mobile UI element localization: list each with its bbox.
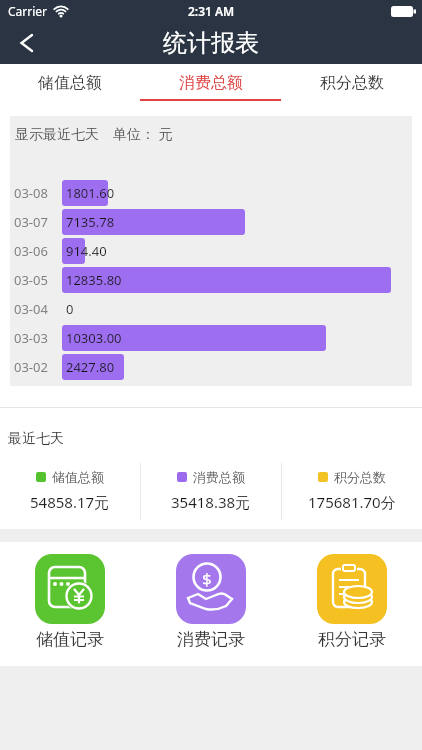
staticText: 03-03 — [14, 329, 48, 347]
staticText: 914.40 — [66, 242, 107, 260]
staticText: 35418.38元 — [171, 492, 251, 512]
staticText: 积分总数 — [334, 469, 386, 485]
staticText: 消费记录 — [177, 629, 245, 650]
staticText: 03-05 — [14, 271, 48, 289]
staticText: 0 — [66, 300, 74, 318]
staticText: 03-08 — [14, 184, 48, 202]
staticText: 12835.80 — [66, 271, 122, 289]
staticText: 175681.70分 — [308, 492, 396, 512]
staticText: 2427.80 — [66, 358, 115, 376]
button[interactable]: 储值记录 — [0, 542, 140, 666]
staticText: 10303.00 — [66, 329, 122, 347]
staticText: 积分记录 — [318, 629, 386, 650]
button[interactable]: 积分总数 — [282, 448, 422, 529]
button[interactable]: 积分总数 — [281, 64, 422, 102]
staticText: 2:31 AM — [188, 3, 235, 19]
button[interactable]: 储值总额 — [0, 64, 140, 102]
button[interactable]: $ — [140, 542, 281, 666]
staticText: $ — [202, 567, 212, 590]
staticText: 储值总额 — [52, 469, 104, 485]
staticText: 统计报表 — [163, 28, 259, 58]
staticText: 03-02 — [14, 358, 48, 376]
button[interactable]: 积分记录 — [281, 542, 422, 666]
button[interactable]: 消费总额 — [141, 448, 281, 529]
staticText: 消费总额 — [179, 73, 243, 93]
staticText: 显示最近七天 单位： 元 — [15, 124, 173, 143]
staticText: 储值记录 — [36, 629, 104, 650]
button[interactable]: 储值总额 — [0, 448, 140, 529]
staticText: 03-07 — [14, 213, 48, 231]
staticText: 03-06 — [14, 242, 48, 260]
staticText: 消费总额 — [193, 469, 245, 485]
staticText: 储值总额 — [38, 73, 102, 93]
staticText: 03-04 — [14, 300, 48, 318]
staticText: Carrier — [8, 3, 48, 19]
staticText: 积分总数 — [320, 73, 384, 93]
button[interactable]: 消费总额 — [140, 64, 281, 102]
staticText: 54858.17元 — [30, 492, 110, 512]
staticText: 1801.60 — [66, 184, 115, 202]
staticText: 7135.78 — [66, 213, 115, 231]
staticText: 最近七天 — [8, 430, 64, 448]
button[interactable] — [0, 22, 52, 64]
